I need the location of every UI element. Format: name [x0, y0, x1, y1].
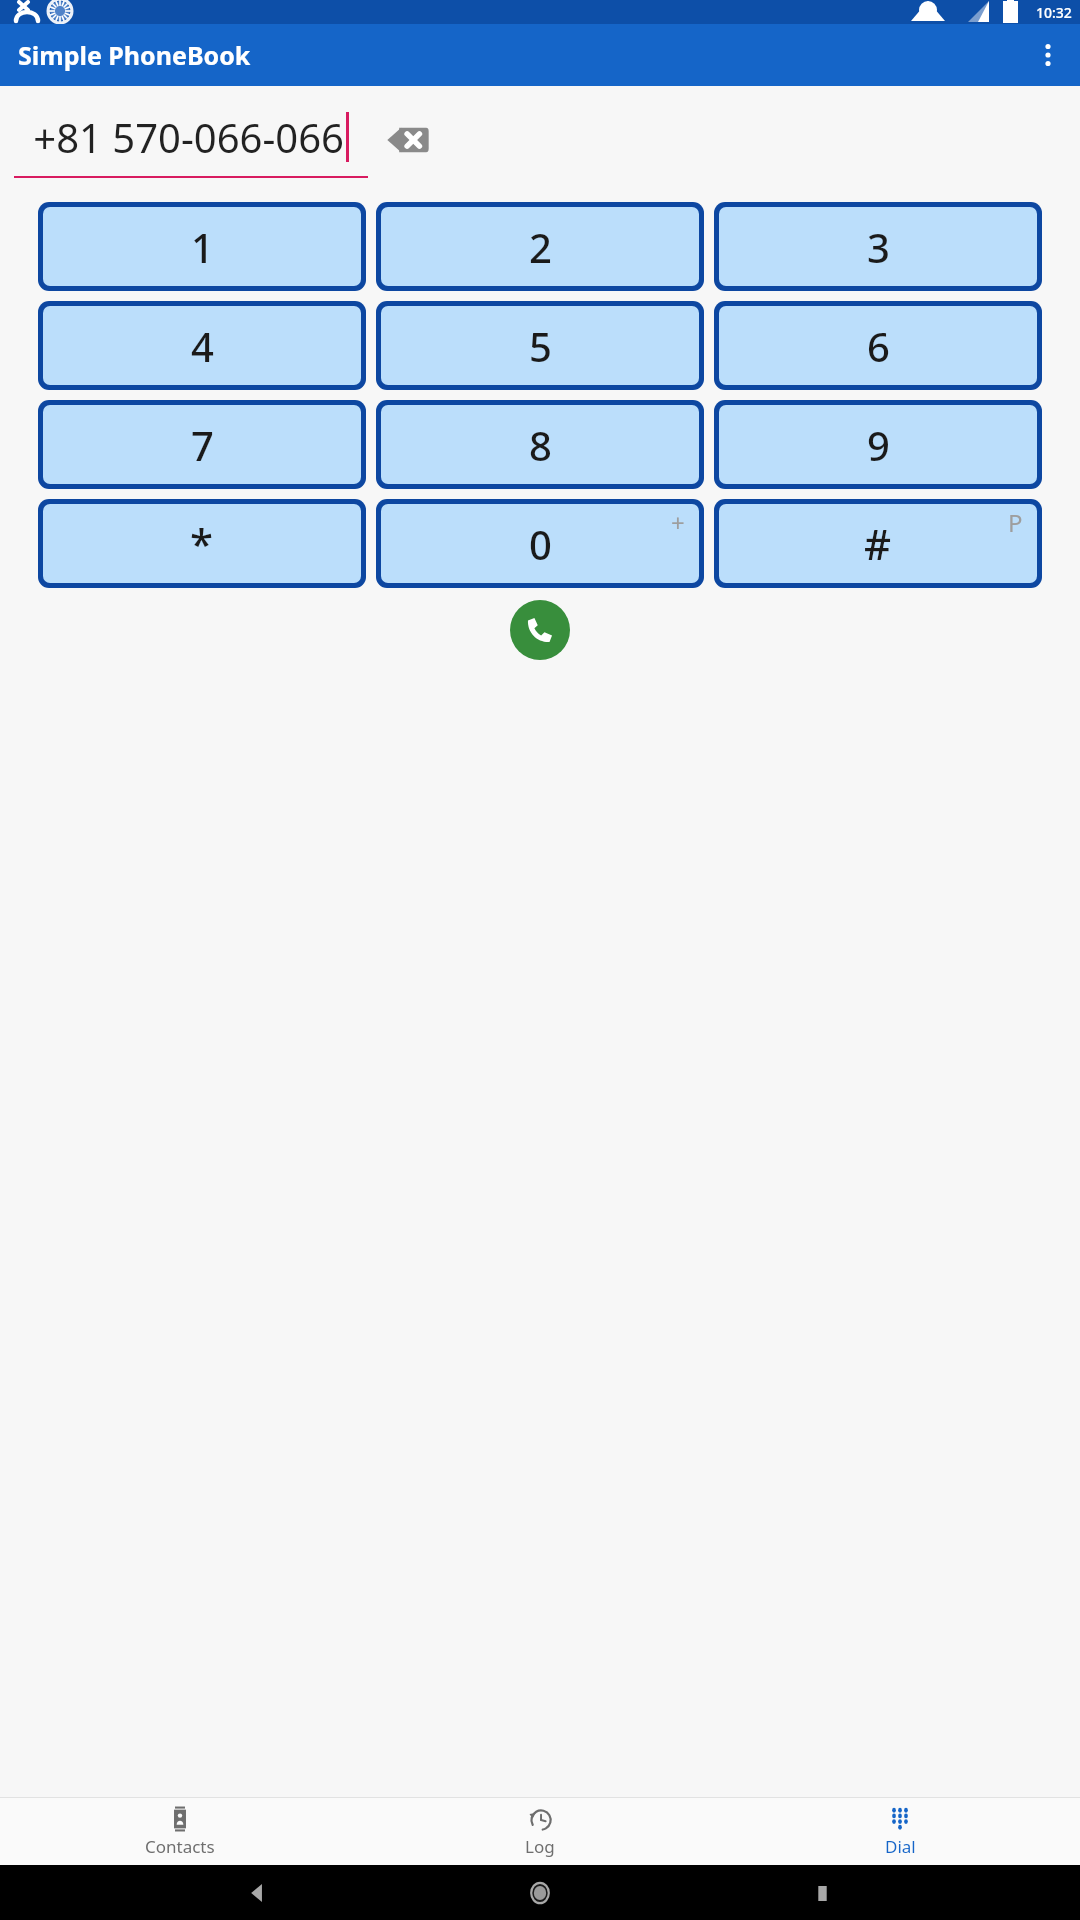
staticText: *	[190, 515, 214, 572]
button[interactable]: 9	[714, 400, 1042, 489]
staticText: 1	[191, 220, 214, 274]
staticText: P	[1008, 506, 1023, 539]
staticText: 6	[867, 319, 890, 373]
other: Contacts	[167, 1806, 193, 1832]
staticText: +81 570-066-066	[33, 110, 344, 164]
button[interactable]: More options	[1024, 31, 1072, 79]
staticText: Simple PhoneBook	[18, 38, 251, 72]
staticText: 10:32	[1036, 3, 1072, 22]
staticText: Log	[525, 1835, 555, 1858]
button[interactable]: 0	[376, 499, 704, 588]
staticText: 3	[867, 220, 890, 274]
button[interactable]: Call	[510, 600, 570, 660]
button[interactable]: #	[714, 499, 1042, 588]
button[interactable]: 4	[38, 301, 366, 390]
button[interactable]: 3	[714, 202, 1042, 291]
other: Dial	[887, 1806, 913, 1832]
staticText: 4	[191, 319, 214, 373]
staticText: 7	[191, 418, 214, 472]
button[interactable]: Contacts	[0, 1798, 360, 1865]
staticText: 8	[529, 418, 552, 472]
button[interactable]: 1	[38, 202, 366, 291]
button[interactable]: Dial	[720, 1798, 1080, 1865]
staticText: 2	[529, 220, 552, 274]
button[interactable]: 7	[38, 400, 366, 489]
button[interactable]: Log	[360, 1798, 720, 1865]
staticText: 9	[867, 418, 890, 472]
staticText: #	[864, 515, 892, 572]
button[interactable]: 2	[376, 202, 704, 291]
staticText: Dial	[885, 1835, 916, 1858]
staticText: +	[671, 506, 685, 539]
button[interactable]: Back	[234, 1869, 282, 1917]
other: Log	[527, 1806, 553, 1832]
button[interactable]: 8	[376, 400, 704, 489]
button[interactable]: 5	[376, 301, 704, 390]
staticText: 5	[529, 319, 552, 373]
button[interactable]: Backspace	[372, 104, 444, 176]
button[interactable]: Recents	[798, 1869, 846, 1917]
button[interactable]: *	[38, 499, 366, 588]
button[interactable]: Home	[516, 1869, 564, 1917]
button[interactable]: +81 570-066-066	[14, 100, 368, 180]
button[interactable]: 6	[714, 301, 1042, 390]
staticText: Contacts	[145, 1835, 215, 1858]
staticText: 0	[529, 517, 552, 571]
